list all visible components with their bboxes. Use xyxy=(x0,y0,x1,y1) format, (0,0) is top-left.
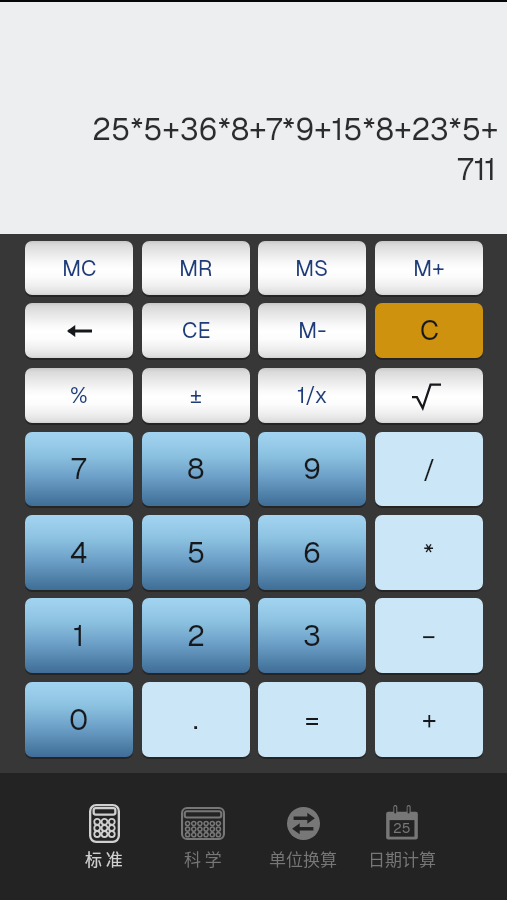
staticText: 单位换算 xyxy=(269,846,337,871)
button[interactable]: * xyxy=(375,515,483,590)
button[interactable]: CE xyxy=(142,303,250,358)
button[interactable]: 4 xyxy=(25,515,133,590)
button[interactable]: M- xyxy=(258,303,366,358)
staticText: MR xyxy=(179,254,213,283)
button[interactable]: 2 xyxy=(142,598,250,673)
staticText: 8 xyxy=(187,450,205,488)
button[interactable]: 1/x xyxy=(258,368,366,423)
button[interactable]: 5 xyxy=(142,515,250,590)
staticText: 25 xyxy=(393,819,411,837)
staticText: MC xyxy=(62,254,97,283)
staticText: % xyxy=(70,381,88,410)
staticText: / xyxy=(423,452,436,486)
staticText: 5 xyxy=(187,534,206,572)
button[interactable]: C xyxy=(375,303,483,358)
staticText: 7 xyxy=(71,450,87,488)
button[interactable]: MS xyxy=(258,241,366,295)
staticText: . xyxy=(193,703,199,737)
button[interactable]: M+ xyxy=(375,241,483,295)
button[interactable]: % xyxy=(25,368,133,423)
staticText: 711 xyxy=(0,149,496,189)
button[interactable]: / xyxy=(375,432,483,506)
staticText: 9 xyxy=(303,450,322,488)
button[interactable]: Standard xyxy=(56,803,152,873)
button[interactable]: ± xyxy=(142,368,250,423)
button[interactable]: Unit conversion xyxy=(255,803,351,873)
staticText: M- xyxy=(298,316,327,345)
staticText: * xyxy=(423,536,435,570)
staticText: 科 学 xyxy=(184,846,222,871)
staticText: MS xyxy=(295,254,329,283)
button[interactable]: 9 xyxy=(258,432,366,506)
button[interactable]: . xyxy=(142,682,250,757)
button[interactable]: = xyxy=(258,682,366,757)
staticText: 3 xyxy=(303,617,321,655)
staticText: + xyxy=(422,703,437,737)
button[interactable]: Date calculation xyxy=(354,803,450,873)
button[interactable]: 0 xyxy=(25,682,133,757)
staticText: CE xyxy=(182,316,211,345)
staticText: = xyxy=(305,703,320,737)
button[interactable]: Square root xyxy=(375,368,483,423)
button[interactable]: 6 xyxy=(258,515,366,590)
staticText: 6 xyxy=(303,534,322,572)
button[interactable]: + xyxy=(375,682,483,757)
staticText: 4 xyxy=(70,534,88,572)
staticText: − xyxy=(422,619,436,653)
button[interactable]: 8 xyxy=(142,432,250,506)
staticText: M+ xyxy=(413,254,445,283)
staticText: 1 xyxy=(73,617,85,655)
button[interactable]: MR xyxy=(142,241,250,295)
button[interactable]: 7 xyxy=(25,432,133,506)
button[interactable]: − xyxy=(375,598,483,673)
button[interactable]: 3 xyxy=(258,598,366,673)
staticText: 1/x xyxy=(297,381,328,410)
staticText: 日期计算 xyxy=(368,846,436,871)
staticText: 标 准 xyxy=(85,846,123,871)
button[interactable]: Scientific xyxy=(155,803,251,873)
button[interactable]: MC xyxy=(25,241,133,295)
button[interactable]: Backspace xyxy=(25,303,133,358)
staticText: 0 xyxy=(69,701,89,739)
staticText: 2 xyxy=(187,617,205,655)
staticText: C xyxy=(420,313,439,348)
staticText: 25*5+36*8+7*9+15*8+23*5+ xyxy=(0,109,498,149)
staticText: ± xyxy=(190,381,202,410)
button[interactable]: 1 xyxy=(25,598,133,673)
